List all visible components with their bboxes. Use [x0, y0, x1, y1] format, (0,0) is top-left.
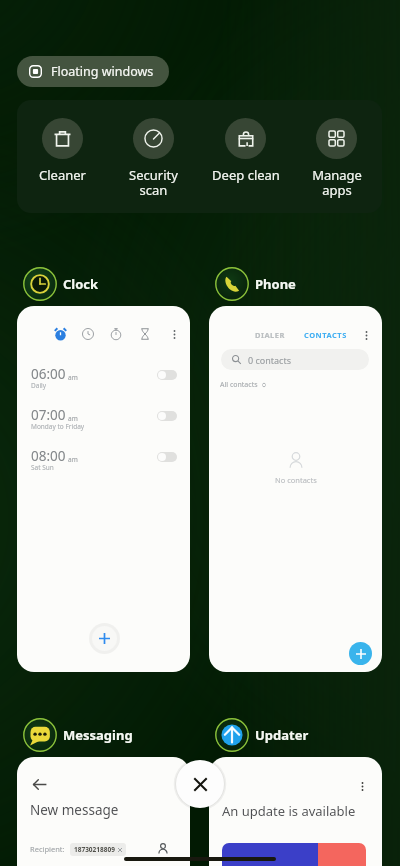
button[interactable]: Back [27, 772, 51, 796]
staticText: Monday to Friday [31, 422, 85, 431]
button[interactable]: Phone [215, 267, 296, 301]
staticText: Phone [255, 275, 296, 293]
staticText: 06:00 [31, 365, 66, 383]
staticText: No contacts [275, 475, 317, 485]
staticText: am [68, 373, 78, 382]
button[interactable]: 0 contacts [221, 349, 369, 370]
button[interactable]: Toggle alarm [157, 411, 177, 421]
staticText: Messaging [63, 726, 133, 744]
button[interactable]: Cleaner [17, 100, 108, 213]
staticText: Updater [255, 726, 309, 744]
staticText: New message [30, 801, 119, 819]
button[interactable]: More options [167, 327, 181, 341]
button[interactable]: Deep clean [200, 100, 291, 213]
button[interactable]: DIALER [255, 330, 285, 340]
button[interactable]: Security scan [108, 100, 199, 213]
staticText: Daily [31, 381, 47, 390]
staticText: 18730218809 [74, 845, 115, 854]
staticText: am [68, 455, 78, 464]
staticText: An update is available [222, 802, 356, 820]
button[interactable]: Toggle alarm [157, 370, 177, 380]
staticText: am [68, 414, 78, 423]
staticText: Floating windows [51, 63, 154, 80]
staticText: Recipient: [30, 844, 65, 854]
button[interactable]: Add alarm [92, 626, 117, 651]
button[interactable]: More options [209, 757, 382, 866]
button[interactable]: Messaging [23, 718, 133, 752]
button[interactable]: 18730218809 [70, 843, 126, 856]
staticText: 07:00 [31, 406, 66, 424]
button[interactable]: Close all [176, 760, 224, 808]
staticText: 08:00 [31, 447, 66, 465]
button[interactable]: Manage apps [291, 100, 382, 213]
staticText: Sat Sun [31, 463, 54, 472]
button[interactable]: CONTACTS [304, 330, 347, 340]
button[interactable]: DIALER [209, 306, 382, 672]
staticText: 0 contacts [248, 354, 291, 366]
staticText: Deep clean [212, 166, 280, 184]
staticText: Security scan [129, 166, 178, 199]
button[interactable]: Updater [215, 718, 309, 752]
button[interactable]: Pick contact [155, 841, 171, 857]
button[interactable]: Floating windows [17, 56, 169, 87]
staticText: Clock [63, 275, 99, 293]
button[interactable]: Clock [23, 267, 99, 301]
staticText: All contacts [220, 380, 258, 390]
staticText: Manage apps [312, 166, 362, 199]
button[interactable]: Toggle alarm [157, 452, 177, 462]
button[interactable]: All contacts [220, 380, 267, 390]
button[interactable]: More options [359, 328, 373, 342]
button[interactable]: Add contact [349, 642, 372, 665]
button[interactable]: More options [352, 776, 372, 796]
button[interactable]: Back [17, 757, 190, 866]
button[interactable]: More options [17, 306, 190, 672]
staticText: Cleaner [39, 166, 86, 184]
